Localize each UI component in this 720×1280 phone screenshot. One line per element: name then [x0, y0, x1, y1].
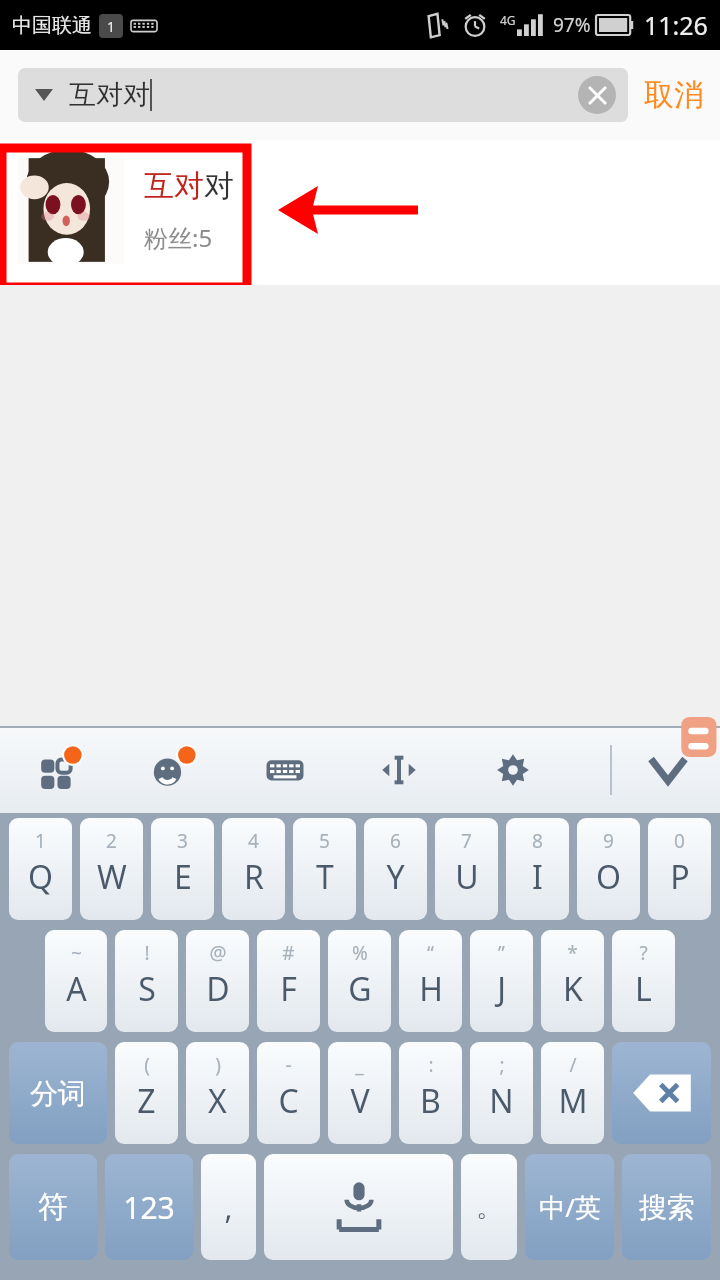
button[interactable]: 符: [9, 1154, 97, 1260]
staticText: 互对: [144, 167, 204, 205]
staticText: L: [635, 967, 652, 1011]
button[interactable]: 互对对: [18, 68, 628, 122]
button[interactable]: 。: [461, 1154, 517, 1260]
button[interactable]: 0: [648, 818, 711, 920]
button[interactable]: 5: [293, 818, 356, 920]
staticText: ;: [499, 1052, 505, 1078]
staticText: ): [215, 1052, 221, 1078]
button[interactable]: [612, 1042, 711, 1144]
button[interactable]: 1: [9, 818, 72, 920]
staticText: 7: [461, 828, 472, 854]
staticText: 搜索: [639, 1190, 695, 1225]
button[interactable]: 2: [80, 818, 143, 920]
staticText: _: [355, 1052, 364, 1078]
staticText: H: [419, 967, 443, 1011]
button[interactable]: Clear: [578, 76, 616, 114]
staticText: #: [282, 940, 295, 966]
staticText: S: [138, 967, 156, 1011]
staticText: %: [352, 940, 368, 966]
button[interactable]: 123: [105, 1154, 193, 1260]
staticText: N: [489, 1079, 514, 1123]
staticText: C: [278, 1079, 299, 1123]
staticText: T: [316, 855, 334, 899]
button[interactable]: %: [328, 930, 391, 1032]
button[interactable]: [264, 1154, 453, 1260]
button[interactable]: #: [257, 930, 320, 1032]
button[interactable]: 中/英: [525, 1154, 614, 1260]
button[interactable]: 9: [577, 818, 640, 920]
button[interactable]: !: [115, 930, 178, 1032]
staticText: 9: [603, 828, 614, 854]
staticText: Q: [28, 855, 53, 899]
staticText: 分词: [30, 1076, 86, 1111]
button[interactable]: 8: [506, 818, 569, 920]
staticText: 1: [107, 17, 116, 36]
staticText: 8: [532, 828, 543, 854]
button[interactable]: :: [399, 1042, 462, 1144]
button[interactable]: Emoji: [142, 741, 200, 799]
staticText: X: [208, 1079, 227, 1123]
button[interactable]: _: [328, 1042, 391, 1144]
staticText: 6: [390, 828, 401, 854]
button[interactable]: Cursor move: [370, 741, 428, 799]
staticText: 4: [248, 828, 259, 854]
staticText: U: [455, 855, 479, 899]
staticText: 2: [106, 828, 117, 854]
staticText: 123: [123, 1187, 175, 1228]
staticText: D: [206, 967, 230, 1011]
staticText: *: [567, 940, 578, 966]
button[interactable]: (: [115, 1042, 178, 1144]
button[interactable]: 搜索: [622, 1154, 711, 1260]
button[interactable]: @: [186, 930, 249, 1032]
staticText: 0: [674, 828, 685, 854]
staticText: 互对对: [69, 78, 150, 112]
button[interactable]: Settings: [484, 741, 542, 799]
staticText: P: [670, 855, 690, 899]
staticText: 。: [476, 1191, 502, 1224]
staticText: J: [497, 967, 506, 1011]
button[interactable]: *: [541, 930, 604, 1032]
staticText: ,: [224, 1187, 233, 1228]
staticText: 中/英: [539, 1189, 601, 1225]
staticText: M: [558, 1079, 588, 1123]
staticText: “: [427, 940, 434, 966]
button[interactable]: 7: [435, 818, 498, 920]
button[interactable]: 取消: [644, 76, 704, 114]
staticText: @: [209, 940, 227, 966]
button[interactable]: ;: [470, 1042, 533, 1144]
staticText: K: [563, 967, 583, 1011]
button[interactable]: ?: [612, 930, 675, 1032]
staticText: Y: [386, 855, 405, 899]
button[interactable]: Hide keyboard: [640, 742, 696, 798]
staticText: I: [532, 855, 543, 899]
button[interactable]: ~: [45, 930, 107, 1032]
button[interactable]: 6: [364, 818, 427, 920]
button[interactable]: “: [399, 930, 462, 1032]
staticText: !: [144, 940, 150, 966]
button[interactable]: ”: [470, 930, 533, 1032]
button[interactable]: ,: [201, 1154, 256, 1260]
staticText: V: [350, 1079, 370, 1123]
staticText: 对: [204, 167, 234, 205]
button[interactable]: 4: [222, 818, 285, 920]
staticText: F: [280, 967, 297, 1011]
staticText: W: [97, 855, 127, 899]
staticText: 97%: [553, 12, 591, 38]
button[interactable]: 3: [151, 818, 214, 920]
staticText: Z: [137, 1079, 156, 1123]
staticText: 5: [319, 828, 330, 854]
staticText: 4G: [500, 12, 516, 28]
staticText: R: [244, 855, 264, 899]
staticText: 3: [177, 828, 188, 854]
button[interactable]: -: [257, 1042, 320, 1144]
button[interactable]: /: [541, 1042, 604, 1144]
button[interactable]: Keyboard layout: [256, 741, 314, 799]
staticText: :: [428, 1052, 434, 1078]
button[interactable]: ): [186, 1042, 249, 1144]
button[interactable]: Apps: [28, 741, 86, 799]
staticText: 1: [35, 828, 46, 854]
button[interactable]: 分词: [9, 1042, 107, 1144]
staticText: A: [66, 967, 87, 1011]
button[interactable]: 互对: [0, 140, 720, 280]
staticText: ~: [71, 940, 82, 966]
